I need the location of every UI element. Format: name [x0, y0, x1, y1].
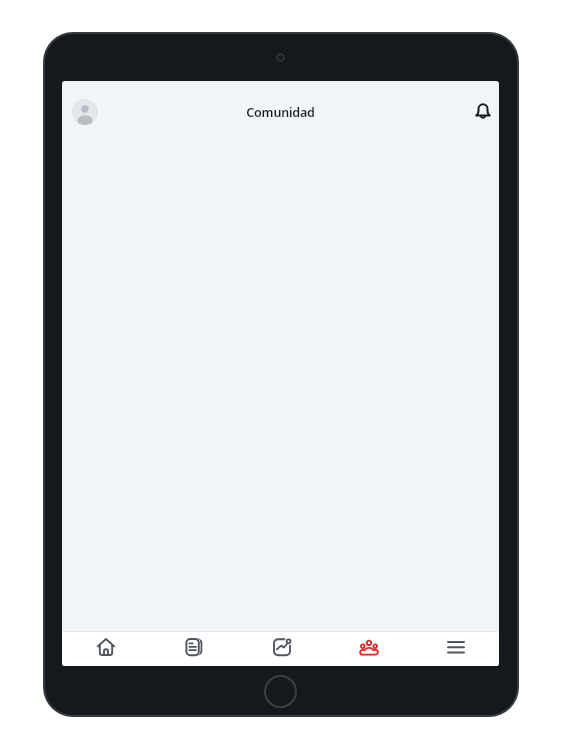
button[interactable]: [72, 99, 98, 125]
button[interactable]: [238, 631, 325, 666]
button[interactable]: [62, 631, 150, 666]
staticText: Comunidad: [246, 104, 315, 121]
button[interactable]: [470, 99, 496, 125]
button[interactable]: [150, 631, 238, 666]
button[interactable]: [412, 631, 499, 666]
button[interactable]: [325, 631, 412, 666]
